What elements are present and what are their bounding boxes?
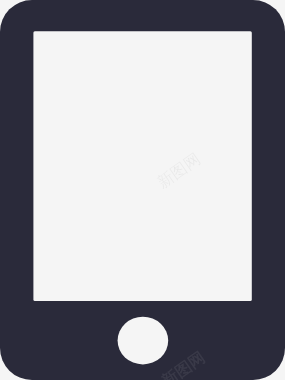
- button[interactable]: Home button: [118, 317, 169, 365]
- button[interactable]: Tablet device: [0, 0, 285, 380]
